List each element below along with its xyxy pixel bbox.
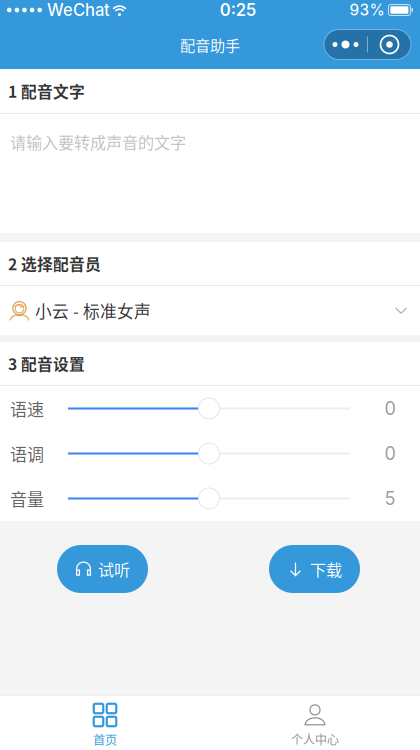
button[interactable]: 试听 bbox=[57, 545, 148, 593]
staticText: 2 选择配音员 bbox=[8, 252, 101, 275]
staticText: 个人中心 bbox=[291, 730, 339, 748]
staticText: 语速 bbox=[10, 396, 44, 421]
staticText: 下载 bbox=[310, 557, 342, 581]
staticText: 93% bbox=[349, 1, 384, 19]
button[interactable]: 首页 bbox=[0, 695, 210, 750]
staticText: 0:25 bbox=[220, 0, 256, 20]
staticText: 首页 bbox=[93, 730, 117, 748]
staticText: 1 配音文字 bbox=[8, 80, 85, 102]
staticText: 音量 bbox=[10, 486, 44, 511]
staticText: 小云 - 标准女声 bbox=[35, 298, 151, 322]
button[interactable]: More options bbox=[324, 29, 411, 59]
button[interactable]: 下载 bbox=[269, 545, 360, 593]
staticText: 5 bbox=[384, 488, 395, 509]
staticText: 0 bbox=[384, 443, 395, 464]
staticText: 3 配音设置 bbox=[8, 352, 85, 375]
button[interactable]: 个人中心 bbox=[210, 695, 420, 750]
staticText: 配音助手 bbox=[180, 33, 240, 55]
staticText: WeChat bbox=[47, 0, 110, 20]
staticText: 试听 bbox=[98, 557, 130, 581]
staticText: 请输入要转成声音的文字 bbox=[10, 130, 186, 153]
button[interactable]: 小云 - 标准女声 bbox=[0, 286, 420, 335]
staticText: 语调 bbox=[10, 441, 44, 466]
staticText: 0 bbox=[384, 398, 395, 419]
